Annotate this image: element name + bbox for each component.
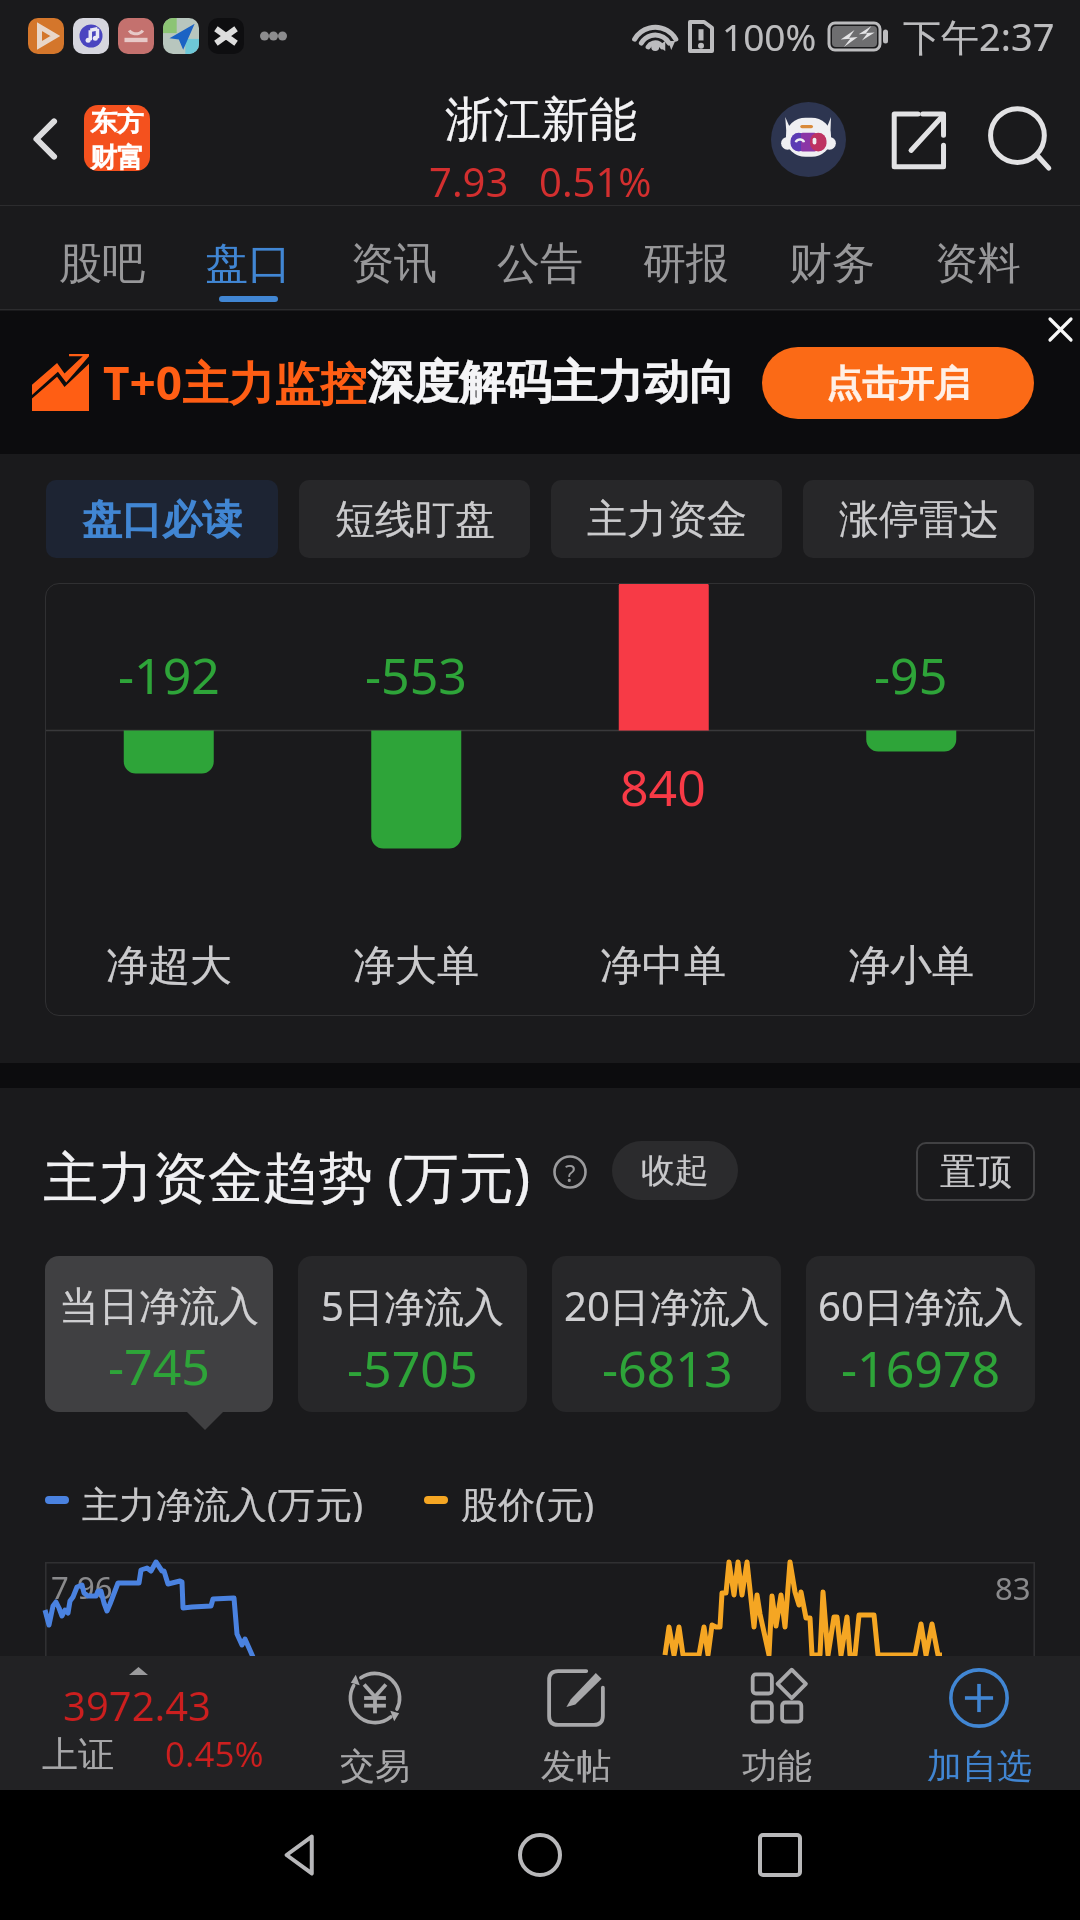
staticText: 净超大 xyxy=(106,940,232,993)
button[interactable]: Home xyxy=(505,1820,575,1890)
staticText: ? xyxy=(565,1156,576,1189)
button[interactable]: Share xyxy=(880,102,955,177)
staticText: 840 xyxy=(620,753,706,821)
staticText: 上证 xyxy=(42,1732,114,1777)
button[interactable]: 资讯 xyxy=(351,206,437,310)
button[interactable]: Search xyxy=(982,102,1057,177)
staticText: -16978 xyxy=(841,1334,1001,1402)
staticText: 深度解码主力动向 xyxy=(367,354,735,412)
staticText: 盘口 xyxy=(205,237,291,291)
staticText: 83 xyxy=(995,1567,1031,1609)
staticText: T+0主力监控 xyxy=(103,351,367,414)
button[interactable]: 置顶 xyxy=(916,1142,1035,1201)
staticText: 7.96 xyxy=(51,1566,113,1608)
staticText: -192 xyxy=(118,641,220,709)
staticText: 盘口必读 xyxy=(82,494,242,544)
staticText: -553 xyxy=(365,641,467,709)
staticText: -745 xyxy=(108,1332,210,1400)
button[interactable]: 3972.43 xyxy=(0,1656,274,1790)
staticText: 股吧 xyxy=(59,237,145,291)
staticText: 0.45% xyxy=(165,1730,264,1778)
button[interactable]: Back xyxy=(8,100,86,178)
staticText: 60日净流入 xyxy=(818,1278,1024,1333)
staticText: 东方 xyxy=(90,105,144,139)
button[interactable]: Recents xyxy=(745,1820,815,1890)
button[interactable]: Assistant xyxy=(771,102,846,177)
staticText: 净中单 xyxy=(600,940,726,993)
staticText: 0.51% xyxy=(539,154,652,206)
button[interactable]: 发帖 xyxy=(475,1656,676,1790)
button[interactable]: Close xyxy=(1041,311,1080,347)
button[interactable]: 加自选 xyxy=(878,1656,1080,1790)
staticText: 7.93 xyxy=(429,154,509,206)
staticText: 3972.43 xyxy=(63,1678,211,1732)
staticText: 主力资金趋势 (万元) xyxy=(43,1138,531,1213)
staticText: 5日净流入 xyxy=(321,1278,504,1333)
staticText: 研报 xyxy=(643,237,729,291)
button[interactable]: 资料 xyxy=(935,206,1021,310)
staticText: 净大单 xyxy=(353,940,479,993)
button[interactable]: 主力资金 xyxy=(551,480,782,558)
staticText: -95 xyxy=(874,641,948,709)
button[interactable]: 公告 xyxy=(497,206,583,310)
button[interactable]: 交易 xyxy=(274,1656,475,1790)
button[interactable]: T+0主力监控 xyxy=(0,311,1080,454)
button[interactable]: 功能 xyxy=(676,1656,878,1790)
button[interactable]: 盘口必读 xyxy=(46,480,278,558)
button[interactable]: 东方 xyxy=(84,105,150,171)
button[interactable]: 股吧 xyxy=(59,206,145,310)
staticText: 下午2:37 xyxy=(903,10,1055,62)
button[interactable]: 盘口 xyxy=(205,206,291,310)
staticText: 功能 xyxy=(742,1744,812,1788)
staticText: -6813 xyxy=(602,1334,733,1402)
staticText: 股价(元) xyxy=(461,1478,595,1522)
staticText: 净小单 xyxy=(848,940,974,993)
staticText: 加自选 xyxy=(927,1744,1032,1788)
staticText: 财务 xyxy=(789,237,875,291)
staticText: 财富 xyxy=(90,141,144,171)
button[interactable]: 20日净流入 xyxy=(552,1256,781,1412)
staticText: 资讯 xyxy=(351,237,437,291)
staticText: 20日净流入 xyxy=(564,1278,770,1333)
staticText: 主力净流入(万元) xyxy=(82,1478,364,1522)
staticText: 公告 xyxy=(497,237,583,291)
staticText: 100% xyxy=(722,11,817,61)
staticText: 浙江新能 xyxy=(445,90,637,150)
staticText: 收起 xyxy=(641,1149,709,1192)
staticText: 点击开启 xyxy=(826,361,970,406)
button[interactable]: Back xyxy=(265,1820,335,1890)
staticText: 发帖 xyxy=(541,1744,611,1788)
staticText: 当日净流入 xyxy=(59,1281,259,1331)
button[interactable]: 财务 xyxy=(789,206,875,310)
staticText: 交易 xyxy=(340,1744,410,1788)
button[interactable]: 5日净流入 xyxy=(298,1256,527,1412)
staticText: 置顶 xyxy=(940,1149,1012,1194)
staticText: 涨停雷达 xyxy=(839,494,999,544)
button[interactable]: 短线盯盘 xyxy=(299,480,530,558)
staticText: -5705 xyxy=(347,1334,478,1402)
button[interactable]: 收起 xyxy=(612,1141,738,1200)
staticText: 短线盯盘 xyxy=(335,494,495,544)
button[interactable]: Help xyxy=(553,1155,587,1189)
button[interactable]: 点击开启 xyxy=(762,347,1034,419)
button[interactable]: 60日净流入 xyxy=(806,1256,1035,1412)
staticText: 主力资金 xyxy=(587,494,747,544)
button[interactable]: 当日净流入 xyxy=(45,1256,273,1412)
button[interactable]: 研报 xyxy=(643,206,729,310)
button[interactable]: 涨停雷达 xyxy=(803,480,1034,558)
staticText: 资料 xyxy=(935,237,1021,291)
